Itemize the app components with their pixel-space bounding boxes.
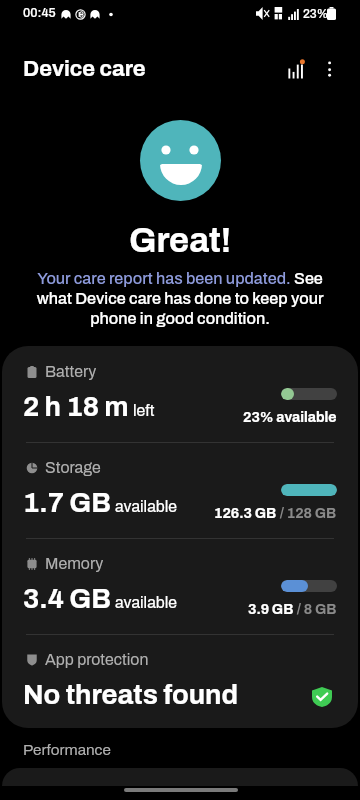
- staticText: Storage: [45, 459, 101, 476]
- staticText: 1.7 GB: [23, 488, 111, 518]
- staticText: Device care: [23, 57, 146, 81]
- button[interactable]: Memory: [2, 538, 358, 634]
- staticText: Memory: [45, 555, 104, 572]
- staticText: Your care report has been updated. See w…: [24, 270, 336, 327]
- staticText: App protection: [45, 651, 149, 668]
- staticText: Battery: [45, 363, 97, 380]
- staticText: 23%: [303, 7, 329, 20]
- staticText: 3.9 GB: [248, 602, 294, 617]
- staticText: available: [115, 498, 177, 515]
- staticText: 126.3 GB: [214, 506, 277, 521]
- staticText: available: [115, 594, 177, 611]
- staticText: No threats found: [23, 680, 239, 710]
- button[interactable]: Storage: [2, 442, 358, 538]
- staticText: Performance: [23, 742, 111, 759]
- staticText: 00:45: [23, 6, 56, 20]
- staticText: / 128 GB: [277, 506, 337, 521]
- button[interactable]: Battery: [2, 346, 358, 442]
- button[interactable]: Diagnostics: [275, 52, 305, 82]
- staticText: / 8 GB: [294, 602, 337, 617]
- staticText: 23% available: [243, 410, 337, 425]
- button[interactable]: App protection: [2, 634, 358, 728]
- staticText: left: [133, 402, 155, 419]
- staticText: 3.4 GB: [23, 584, 111, 614]
- staticText: Great!: [0, 222, 360, 259]
- button[interactable]: More options: [316, 52, 344, 80]
- staticText: 2 h 18 m: [23, 392, 129, 422]
